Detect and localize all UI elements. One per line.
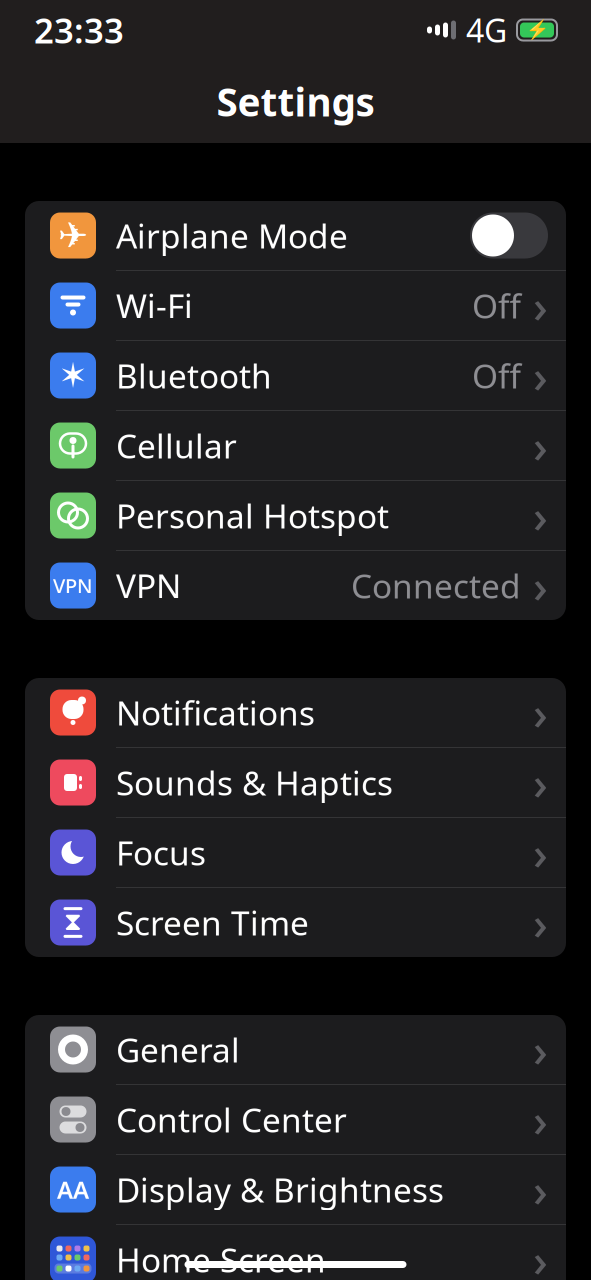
staticText: › bbox=[533, 555, 548, 616]
button[interactable]: Focus bbox=[25, 818, 566, 888]
staticText: Screen Time bbox=[116, 900, 309, 945]
staticText: › bbox=[533, 752, 548, 813]
staticText: ✶ bbox=[58, 356, 87, 395]
staticText: Notifications bbox=[116, 690, 315, 735]
staticText: › bbox=[533, 682, 548, 743]
staticText: Home Screen bbox=[116, 1237, 326, 1280]
staticText: › bbox=[533, 1089, 548, 1150]
staticText: › bbox=[533, 1019, 548, 1080]
staticText: › bbox=[533, 345, 548, 406]
staticText: Off bbox=[472, 283, 521, 328]
staticText: › bbox=[533, 485, 548, 546]
staticText: › bbox=[533, 275, 548, 336]
staticText: Control Center bbox=[116, 1097, 347, 1142]
staticText: 4G bbox=[466, 9, 507, 51]
staticText: VPN bbox=[53, 572, 93, 599]
staticText: ⧗ bbox=[64, 910, 82, 935]
button[interactable]: ⧗ bbox=[25, 888, 566, 957]
staticText: › bbox=[533, 892, 548, 953]
staticText: › bbox=[533, 822, 548, 883]
button[interactable]: AA bbox=[25, 1155, 566, 1225]
button[interactable]: General bbox=[25, 1015, 566, 1085]
staticText: Wi-Fi bbox=[116, 283, 193, 328]
button[interactable]: Wi-Fi bbox=[25, 271, 566, 341]
staticText: › bbox=[533, 1159, 548, 1220]
button[interactable]: Personal Hotspot bbox=[25, 481, 566, 551]
staticText: General bbox=[116, 1027, 240, 1072]
staticText: › bbox=[533, 1229, 548, 1280]
staticText: Sounds & Haptics bbox=[116, 760, 393, 805]
staticText: ✈ bbox=[58, 215, 88, 256]
staticText: ⚡ bbox=[525, 19, 548, 41]
staticText: 23:33 bbox=[34, 7, 124, 53]
button[interactable]: Cellular bbox=[25, 411, 566, 481]
button[interactable]: Notifications bbox=[25, 678, 566, 748]
button[interactable]: ✈ bbox=[25, 201, 566, 271]
staticText: Personal Hotspot bbox=[116, 493, 389, 538]
staticText: Bluetooth bbox=[116, 353, 272, 398]
staticText: › bbox=[533, 415, 548, 476]
button[interactable]: ✶ bbox=[25, 341, 566, 411]
staticText: AA bbox=[57, 1174, 89, 1205]
staticText: Display & Brightness bbox=[116, 1167, 444, 1212]
staticText: Settings bbox=[216, 76, 374, 127]
staticText: Connected bbox=[351, 563, 521, 608]
button[interactable]: Control Center bbox=[25, 1085, 566, 1155]
staticText: Cellular bbox=[116, 423, 237, 468]
staticText: Focus bbox=[116, 830, 206, 875]
button[interactable]: Sounds & Haptics bbox=[25, 748, 566, 818]
staticText: VPN bbox=[116, 563, 181, 608]
button[interactable]: Home Screen bbox=[25, 1225, 566, 1280]
staticText: Off bbox=[472, 353, 521, 398]
staticText: Airplane Mode bbox=[116, 213, 348, 258]
button[interactable]: VPN bbox=[25, 551, 566, 620]
